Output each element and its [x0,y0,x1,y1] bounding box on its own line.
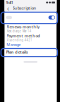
button[interactable]: Renews monthly [4,24,56,33]
button[interactable]: Plan details [4,48,56,56]
button[interactable]: Payment method [4,33,56,42]
staticText: 9:41 [6,0,13,5]
staticText: Payment method [6,33,39,38]
staticText: Next charge Mar 14 [6,29,31,33]
button[interactable] [4,12,56,23]
button[interactable]: Manage [4,42,56,47]
staticText: Plan details [6,49,28,55]
staticText: Manage [6,42,20,47]
staticText: Subscription [12,5,36,11]
button[interactable]: Back [5,5,10,11]
staticText: Visa ending 4421 [6,38,32,42]
staticText: ‹ [7,3,9,13]
staticText: Renews monthly [6,24,39,29]
